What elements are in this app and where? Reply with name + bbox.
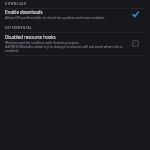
staticText: Enable downloads xyxy=(5,9,43,15)
button[interactable]: Disabled checkbox xyxy=(131,39,140,48)
button[interactable]: Enabled checkbox xyxy=(131,10,140,19)
staticText: Workaround for conflicts with theming en… xyxy=(5,40,128,53)
staticText: Allow LSPosed/installer to check for upd… xyxy=(5,15,106,20)
staticText: Disabled resource hooks xyxy=(5,34,56,40)
staticText: EXPERIMENTAL xyxy=(5,26,32,30)
staticText: DOWNLOAD xyxy=(5,2,27,6)
button[interactable]: Disabled resource hooks xyxy=(0,34,150,53)
button[interactable]: Enable downloads xyxy=(0,9,150,20)
